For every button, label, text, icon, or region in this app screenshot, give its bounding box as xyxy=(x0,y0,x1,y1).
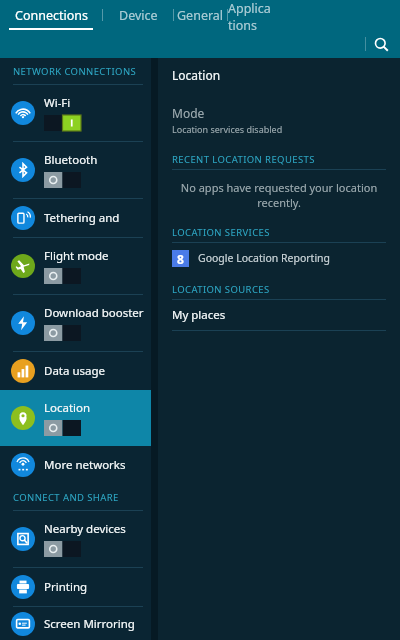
button[interactable]: Tethering and Mobi.. xyxy=(0,199,151,237)
staticText: RECENT LOCATION REQUESTS xyxy=(172,153,315,166)
button[interactable]: Search xyxy=(368,31,394,57)
button[interactable]: Applications xyxy=(228,0,273,30)
button[interactable] xyxy=(44,325,81,341)
staticText: Data usage xyxy=(44,363,106,379)
staticText: CONNECT AND SHARE xyxy=(13,491,119,504)
button[interactable]: Data usage xyxy=(0,352,151,390)
staticText: More networks xyxy=(44,457,126,473)
button[interactable]: More networks xyxy=(0,446,151,484)
button[interactable]: Flight mode xyxy=(0,238,151,294)
button[interactable] xyxy=(44,541,81,557)
staticText: Nearby devices xyxy=(44,521,126,537)
button[interactable] xyxy=(44,115,81,131)
button[interactable]: Screen Mirroring xyxy=(0,607,151,640)
staticText: LOCATION SOURCES xyxy=(172,283,270,296)
staticText: Tethering and Mobi.. xyxy=(44,210,151,226)
staticText: Bluetooth xyxy=(44,152,98,168)
button[interactable]: Bluetooth xyxy=(0,142,151,198)
staticText: Location xyxy=(44,400,91,416)
staticText: Location xyxy=(172,67,221,83)
staticText: 8 xyxy=(177,251,184,267)
button[interactable] xyxy=(44,420,81,436)
button[interactable]: Download booster xyxy=(0,295,151,351)
staticText: Connections xyxy=(15,7,88,24)
button[interactable]: General xyxy=(174,0,227,30)
staticText: Google Location Reporting xyxy=(198,251,331,265)
staticText: NETWORK CONNECTIONS xyxy=(13,65,137,78)
button[interactable]: Nearby devices xyxy=(0,511,151,567)
button[interactable] xyxy=(44,268,81,284)
button[interactable]: My places xyxy=(158,300,400,330)
button[interactable]: Printing xyxy=(0,568,151,606)
staticText: General xyxy=(177,7,224,24)
staticText: Device xyxy=(119,7,158,24)
staticText: Download booster xyxy=(44,305,144,321)
staticText: Screen Mirroring xyxy=(44,616,135,632)
button[interactable]: Mode xyxy=(158,105,400,135)
button[interactable] xyxy=(44,172,81,188)
staticText: No apps have requested your location rec… xyxy=(180,180,378,210)
staticText: Applications xyxy=(228,0,273,30)
staticText: Location services disabled xyxy=(172,123,283,135)
button[interactable]: Location xyxy=(0,390,151,446)
button[interactable]: 8 xyxy=(158,243,400,273)
staticText: Mode xyxy=(172,105,205,121)
staticText: Printing xyxy=(44,579,88,595)
button[interactable]: Wi-Fi xyxy=(0,85,151,141)
staticText: LOCATION SERVICES xyxy=(172,226,270,239)
staticText: My places xyxy=(172,307,226,323)
button[interactable]: Connections xyxy=(0,0,102,30)
staticText: Flight mode xyxy=(44,248,109,264)
staticText: Wi-Fi xyxy=(44,95,71,111)
button[interactable]: Device xyxy=(103,0,173,30)
